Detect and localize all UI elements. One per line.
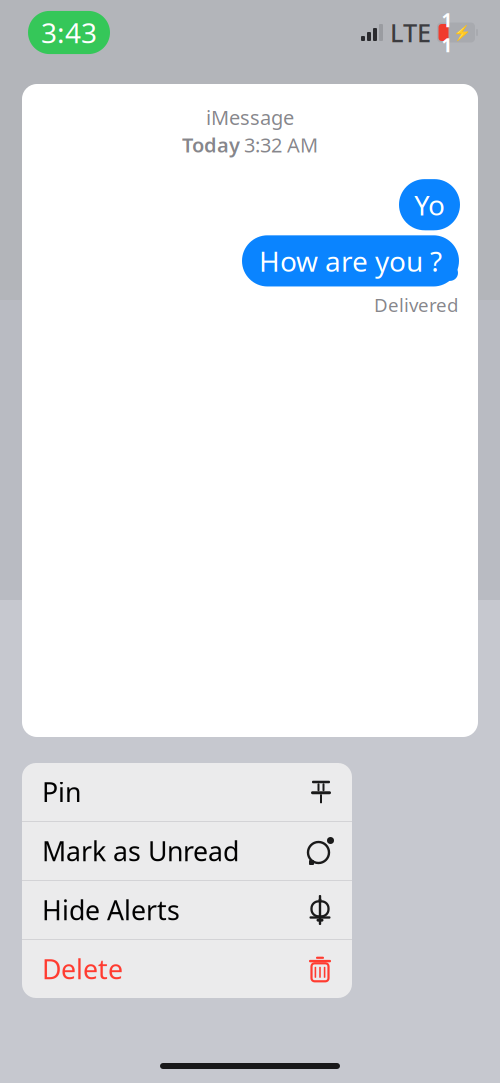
- button[interactable]: Pin: [22, 763, 352, 821]
- button[interactable]: Mark as Unread: [22, 822, 352, 880]
- staticText: Hide Alerts: [42, 892, 180, 928]
- staticText: Delivered: [374, 292, 458, 317]
- staticText: 3:43: [41, 14, 97, 51]
- staticText: Yo: [414, 186, 445, 223]
- staticText: 3:32 AM: [244, 132, 318, 158]
- staticText: Mark as Unread: [42, 833, 239, 869]
- staticText: LTE: [390, 16, 431, 49]
- button[interactable]: Hide Alerts: [22, 881, 352, 939]
- button[interactable]: Delete: [22, 940, 352, 998]
- staticText: How are you ?: [259, 242, 442, 279]
- staticText: iMessage: [206, 104, 294, 131]
- staticText: Delete: [42, 951, 123, 987]
- staticText: ⚡: [452, 24, 470, 41]
- staticText: Today: [182, 132, 240, 158]
- staticText: 11: [441, 8, 452, 57]
- staticText: Pin: [42, 774, 81, 810]
